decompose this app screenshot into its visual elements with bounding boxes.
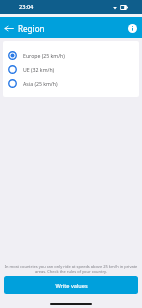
staticText: UE (32 km/h) [23,66,55,73]
button[interactable]: Write values [4,276,138,294]
staticText: 23:04 [19,3,34,11]
button[interactable]: Asia (25 km/h) [3,76,139,90]
staticText: Asia (25 km/h) [23,80,58,87]
staticText: Europe (25 km/h) [23,52,65,59]
button[interactable]: UE (32 km/h) [3,62,139,76]
button[interactable]: Back [0,17,18,38]
staticText: Write values [55,282,88,290]
staticText: In most countries you can only ride at s… [4,264,138,274]
button[interactable]: Info [123,17,142,38]
button[interactable]: Europe (25 km/h) [3,48,139,62]
staticText: Region [18,23,45,34]
